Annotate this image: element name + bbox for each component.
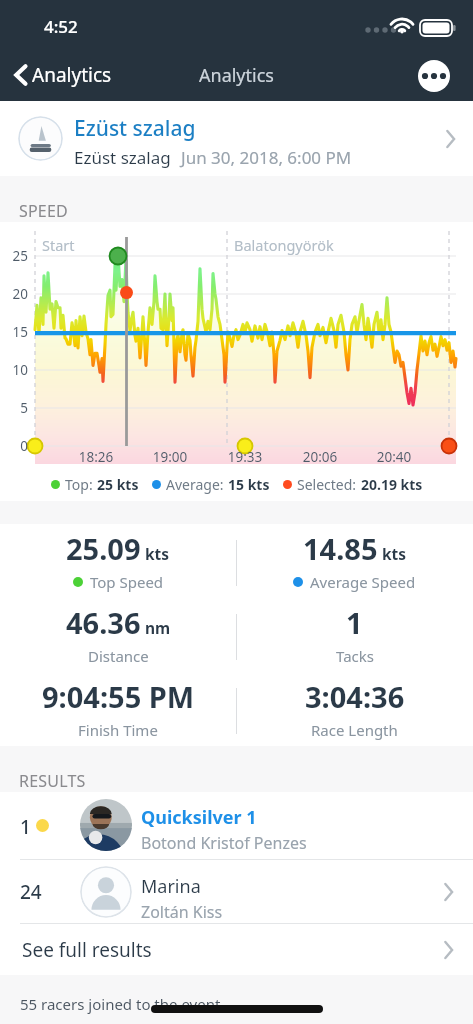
staticText: kts bbox=[145, 543, 170, 564]
staticText: 25 bbox=[0, 247, 28, 265]
staticText: 0 bbox=[0, 437, 28, 455]
staticText: 55 racers joined to the event bbox=[20, 994, 221, 1014]
staticText: Distance bbox=[88, 646, 149, 666]
staticText: Zoltán Kiss bbox=[141, 901, 223, 923]
button[interactable]: 1 bbox=[0, 792, 473, 859]
staticText: 15 bbox=[0, 323, 28, 341]
staticText: 9:04:55 PM bbox=[42, 677, 195, 716]
staticText: 15 kts bbox=[228, 475, 270, 494]
staticText: Start bbox=[42, 235, 75, 255]
staticText: 18:26 bbox=[66, 448, 126, 466]
staticText: Analytics bbox=[199, 63, 274, 88]
staticText: Finish Time bbox=[78, 720, 158, 740]
staticText: 1 bbox=[346, 603, 363, 642]
staticText: 20.19 kts bbox=[361, 475, 423, 494]
staticText: 14.85 bbox=[303, 529, 378, 568]
staticText: 19:33 bbox=[215, 448, 275, 466]
button[interactable]: Ezüst szalag bbox=[0, 101, 473, 176]
staticText: See full results bbox=[22, 937, 152, 963]
button[interactable]: See full results bbox=[0, 924, 473, 975]
staticText: Analytics bbox=[32, 62, 112, 88]
staticText: RESULTS bbox=[19, 770, 86, 792]
staticText: 10 bbox=[0, 361, 28, 379]
staticText: Average: bbox=[166, 475, 224, 494]
staticText: nm bbox=[145, 617, 171, 638]
staticText: kts bbox=[382, 543, 407, 564]
staticText: 20:40 bbox=[364, 448, 424, 466]
staticText: SPEED bbox=[19, 200, 68, 222]
staticText: 5 bbox=[0, 399, 28, 417]
staticText: 25 kts bbox=[97, 475, 139, 494]
staticText: Botond Kristof Penzes bbox=[141, 832, 307, 854]
staticText: Ezüst szalag bbox=[74, 114, 196, 143]
staticText: 19:00 bbox=[140, 448, 200, 466]
staticText: Top: bbox=[65, 475, 93, 494]
staticText: Jun 30, 2018, 6:00 PM bbox=[181, 146, 352, 169]
staticText: 20:06 bbox=[290, 448, 350, 466]
staticText: Tacks bbox=[336, 646, 374, 666]
button[interactable]: More options bbox=[418, 60, 450, 92]
button[interactable]: 24 bbox=[0, 860, 473, 923]
staticText: Top Speed bbox=[90, 572, 164, 592]
staticText: Ezüst szalag bbox=[74, 146, 171, 169]
staticText: Quicksilver 1 bbox=[141, 805, 257, 830]
staticText: 46.36 bbox=[66, 603, 141, 642]
staticText: Marina bbox=[141, 874, 201, 899]
button[interactable]: Analytics bbox=[10, 58, 116, 92]
staticText: 25.09 bbox=[66, 529, 141, 568]
staticText: Race Length bbox=[311, 720, 398, 740]
staticText: 1 bbox=[20, 814, 31, 840]
staticText: 3:04:36 bbox=[305, 677, 405, 716]
staticText: Balatongyörök bbox=[234, 235, 334, 255]
staticText: 20 bbox=[0, 285, 28, 303]
staticText: Average Speed bbox=[310, 572, 416, 592]
staticText: 24 bbox=[20, 879, 42, 905]
staticText: Selected: bbox=[297, 475, 357, 494]
staticText: 4:52 bbox=[44, 15, 78, 38]
